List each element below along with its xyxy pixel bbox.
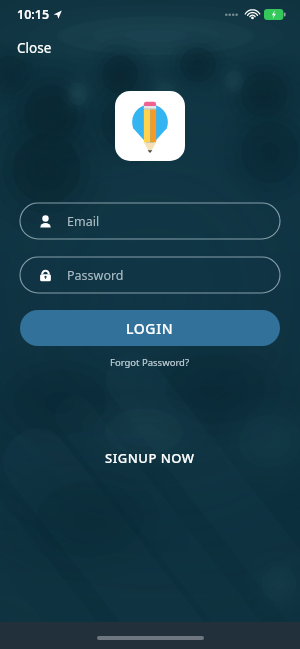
staticText: LOGIN <box>126 319 174 338</box>
button[interactable]: SIGNUP NOW <box>95 444 205 472</box>
staticText: Close <box>17 39 52 57</box>
staticText: SIGNUP NOW <box>105 449 195 467</box>
button[interactable]: Password <box>20 257 280 293</box>
staticText: Email <box>67 213 100 230</box>
button[interactable]: Forgot Password? <box>102 353 198 372</box>
staticText: Forgot Password? <box>110 356 190 369</box>
button[interactable]: Email <box>20 203 280 239</box>
staticText: Password <box>67 267 124 284</box>
button[interactable]: LOGIN <box>20 310 280 346</box>
staticText: 10:15 <box>17 6 50 23</box>
button[interactable]: Close <box>8 36 61 60</box>
